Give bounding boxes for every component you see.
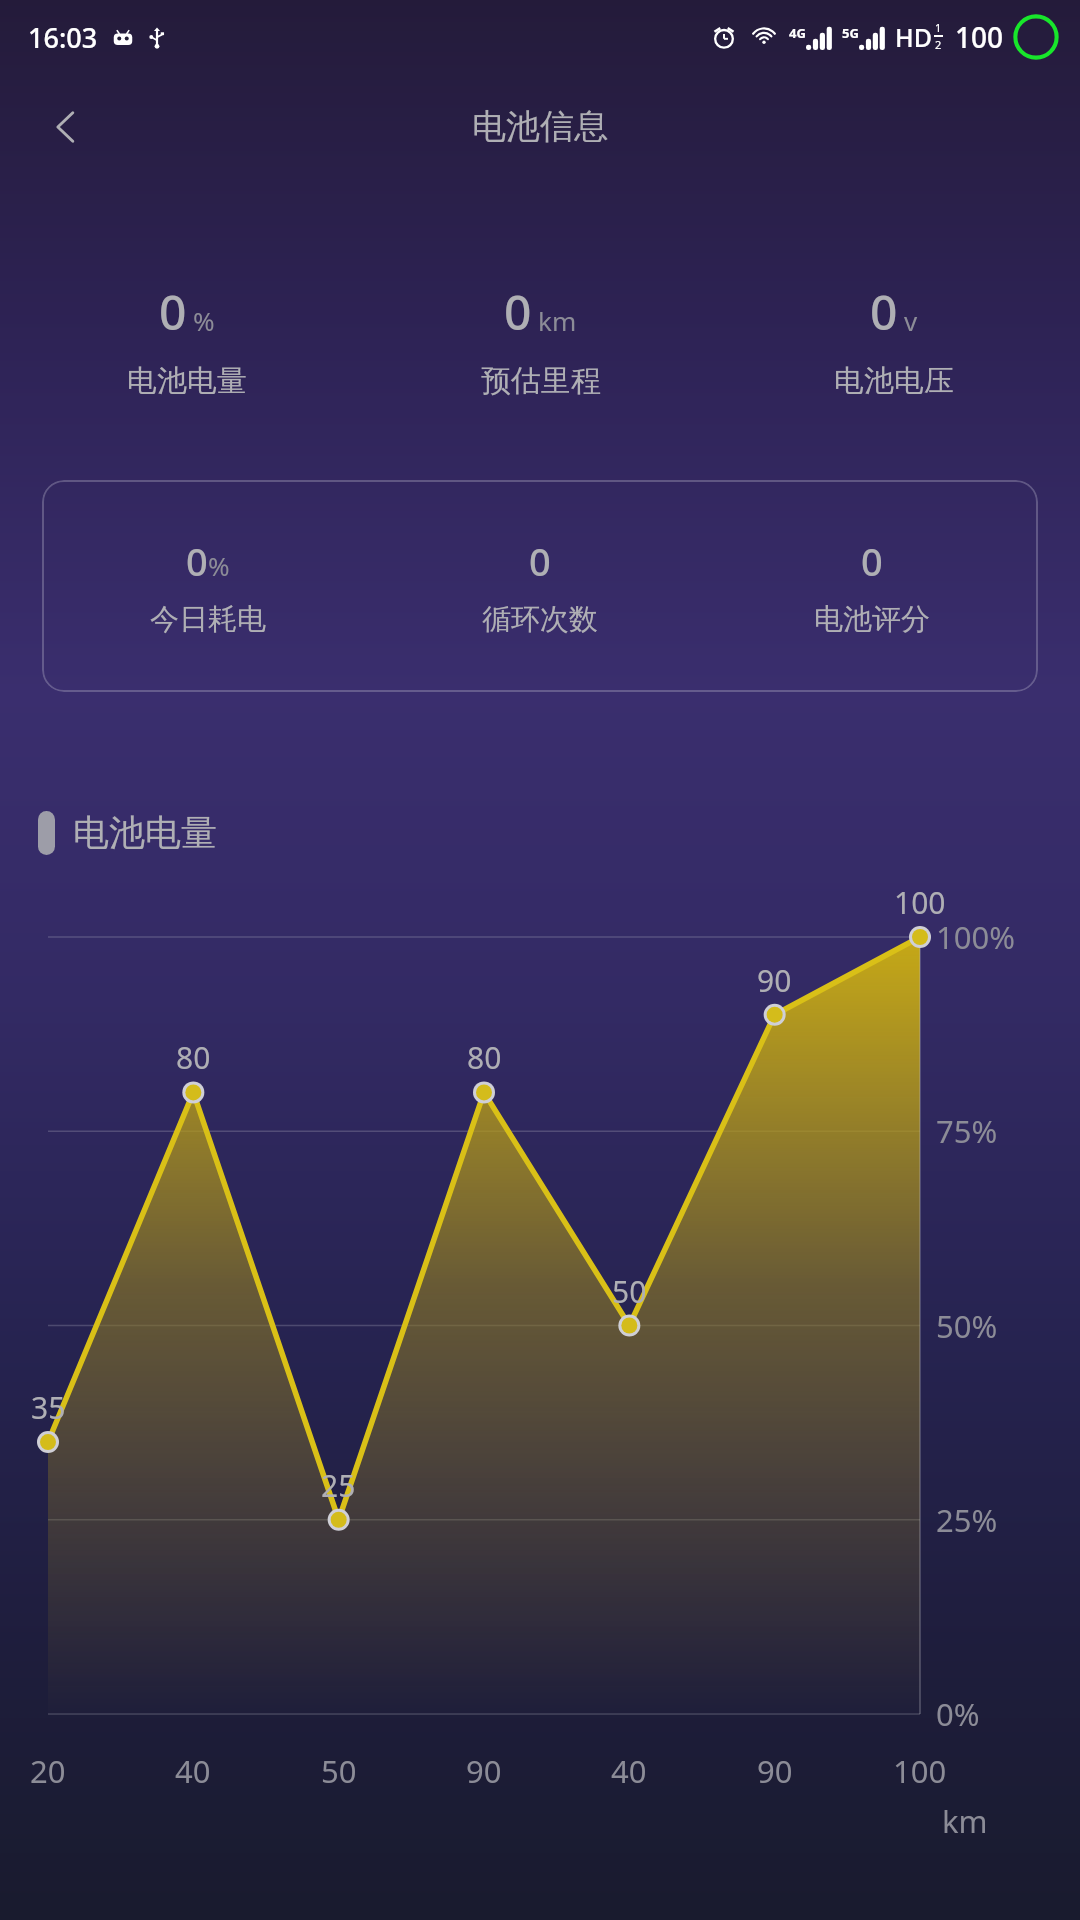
staticText: % xyxy=(193,303,215,338)
staticText: 循环次数 xyxy=(482,601,598,638)
staticText: 0 xyxy=(870,279,898,344)
staticText: 0% xyxy=(936,1693,980,1735)
staticText: km xyxy=(538,303,577,338)
button[interactable]: 电池电量 xyxy=(38,810,217,855)
staticText: 90 xyxy=(466,1750,502,1792)
staticText: 0 xyxy=(159,279,187,344)
staticText: 4G xyxy=(789,24,806,42)
button[interactable]: 0 xyxy=(42,480,1038,692)
staticText: km xyxy=(942,1800,988,1842)
staticText: v xyxy=(904,303,918,338)
staticText: 0 xyxy=(504,279,532,344)
staticText: 25 xyxy=(321,1465,356,1506)
staticText: % xyxy=(208,548,230,583)
staticText: 80 xyxy=(176,1037,211,1078)
staticText: 100 xyxy=(893,1750,947,1792)
staticText: 0 xyxy=(529,535,551,587)
staticText: 16:03 xyxy=(28,19,98,56)
staticText: 1 xyxy=(935,20,942,35)
staticText: 100% xyxy=(936,916,1015,958)
staticText: 100 xyxy=(894,882,946,923)
staticText: 20 xyxy=(30,1750,66,1792)
staticText: HD xyxy=(895,20,932,54)
staticText: 40 xyxy=(611,1750,647,1792)
staticText: 预估里程 xyxy=(481,362,601,400)
staticText: 50% xyxy=(936,1305,998,1347)
staticText: 90 xyxy=(757,1750,793,1792)
staticText: 90 xyxy=(757,960,792,1001)
staticText: 0 xyxy=(861,535,883,587)
staticText: 50 xyxy=(321,1750,357,1792)
button[interactable]: Back xyxy=(30,91,102,163)
staticText: 电池信息 xyxy=(472,105,608,148)
staticText: 2 xyxy=(935,37,942,52)
staticText: 今日耗电 xyxy=(150,601,266,638)
staticText: 5G xyxy=(842,24,859,42)
staticText: 电池电压 xyxy=(834,362,954,400)
staticText: 电池电量 xyxy=(73,810,217,855)
staticText: 100 xyxy=(955,18,1004,56)
staticText: 电池评分 xyxy=(814,601,930,638)
staticText: 40 xyxy=(175,1750,211,1792)
staticText: 25% xyxy=(936,1499,998,1541)
staticText: 0 xyxy=(186,535,208,587)
staticText: 35 xyxy=(31,1387,66,1428)
staticText: 80 xyxy=(467,1037,502,1078)
staticText: 电池电量 xyxy=(127,362,247,400)
staticText: 50 xyxy=(612,1271,647,1312)
staticText: 75% xyxy=(936,1110,998,1152)
